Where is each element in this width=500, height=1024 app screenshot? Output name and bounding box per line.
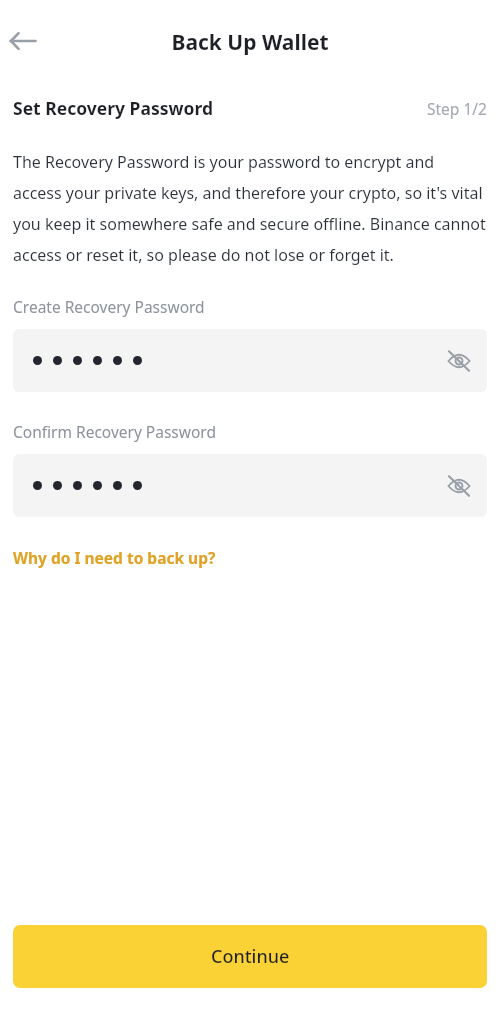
staticText: The Recovery Password is your password t… xyxy=(13,151,487,266)
button[interactable]: Show password xyxy=(437,464,481,508)
button[interactable]: Continue xyxy=(13,925,487,988)
button[interactable]: Back xyxy=(6,24,40,58)
staticText: Back Up Wallet xyxy=(0,28,500,57)
button[interactable]: Show password xyxy=(13,329,487,392)
staticText: Continue xyxy=(211,944,290,969)
staticText: Create Recovery Password xyxy=(13,296,205,317)
button[interactable]: Show password xyxy=(437,339,481,383)
staticText: Confirm Recovery Password xyxy=(13,421,216,442)
staticText: Step 1/2 xyxy=(427,98,487,119)
staticText: Why do I need to back up? xyxy=(13,547,216,568)
staticText: Set Recovery Password xyxy=(13,96,213,120)
button[interactable]: Show password xyxy=(13,454,487,517)
button[interactable]: Why do I need to back up? xyxy=(13,547,216,568)
